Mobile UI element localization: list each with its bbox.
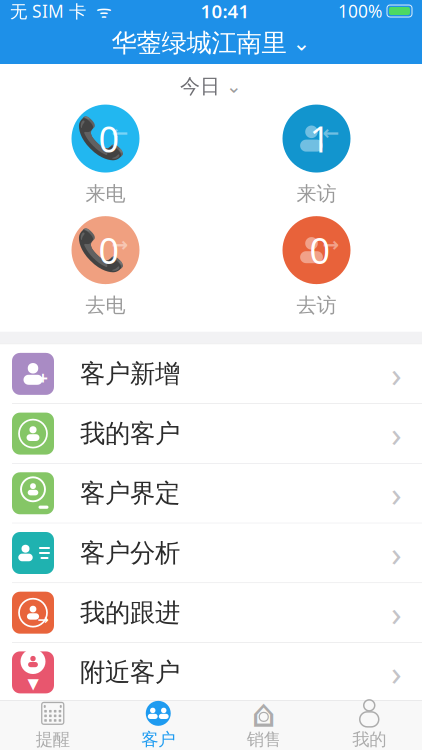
staticText: 我的	[352, 729, 386, 750]
staticText: ←	[111, 122, 128, 144]
button[interactable]: ⌂	[211, 696, 316, 750]
staticText: 今日	[180, 74, 220, 99]
button[interactable]: 0	[282, 216, 350, 318]
button[interactable]: 1	[282, 105, 350, 206]
button[interactable]: 我的客户	[0, 404, 422, 464]
staticText: ⌂	[251, 691, 276, 735]
staticText: 我的跟进	[80, 597, 180, 628]
staticText: →	[111, 233, 128, 256]
staticText: 📞	[75, 116, 125, 161]
staticText: 销售	[247, 729, 281, 750]
staticText: 客户界定	[80, 478, 180, 509]
staticText: 我的客户	[80, 418, 180, 449]
staticText: 0	[309, 226, 330, 274]
staticText: ›	[391, 649, 402, 695]
staticText: ⌄	[292, 31, 310, 55]
button[interactable]: 今日	[168, 64, 254, 101]
button[interactable]: 客户分析	[0, 523, 422, 583]
staticText: 客户新增	[80, 358, 180, 389]
staticText: 华蓥绿城江南里	[111, 27, 286, 58]
staticText: 去访	[296, 293, 336, 318]
staticText: 提醒	[36, 729, 70, 750]
staticText: 客户地图	[80, 716, 180, 748]
staticText: 来访	[296, 182, 336, 206]
button[interactable]: 📞	[71, 216, 139, 318]
button[interactable]: →	[0, 583, 422, 643]
staticText: ›	[391, 530, 402, 576]
button[interactable]: 📞	[71, 105, 139, 206]
staticText: 1	[309, 115, 330, 162]
staticText: 100%	[338, 0, 382, 22]
staticText: ▾	[27, 670, 38, 696]
staticText: ›	[391, 590, 402, 636]
staticText: →	[37, 612, 48, 627]
staticText: 📞	[75, 227, 125, 273]
staticText: 0	[98, 115, 119, 162]
button[interactable]: ▾	[0, 643, 422, 703]
button[interactable]: 客户地图	[0, 703, 422, 750]
staticText: 0	[98, 226, 119, 274]
staticText: 无 SIM 卡 ᯤ	[10, 0, 112, 22]
staticText: ›	[391, 470, 402, 516]
staticText: 来电	[85, 182, 125, 206]
staticText: →	[322, 233, 339, 256]
staticText: ⌄	[226, 76, 242, 97]
staticText: 去电	[85, 293, 125, 318]
staticText: ←	[322, 122, 339, 144]
staticText: 附近客户	[80, 657, 180, 688]
staticText: 客户	[141, 729, 175, 750]
staticText: ›	[391, 411, 402, 457]
button[interactable]: 提醒	[0, 696, 105, 750]
staticText: ›	[391, 351, 402, 397]
button[interactable]: 客户	[105, 696, 211, 750]
staticText: 10:41	[200, 0, 249, 23]
staticText: 客户分析	[80, 537, 180, 568]
button[interactable]: +	[0, 344, 422, 404]
staticText: +	[38, 366, 48, 389]
button[interactable]: 我的	[316, 696, 422, 750]
button[interactable]: 客户界定	[0, 464, 422, 523]
button[interactable]: 华蓥绿城江南里	[101, 21, 320, 64]
